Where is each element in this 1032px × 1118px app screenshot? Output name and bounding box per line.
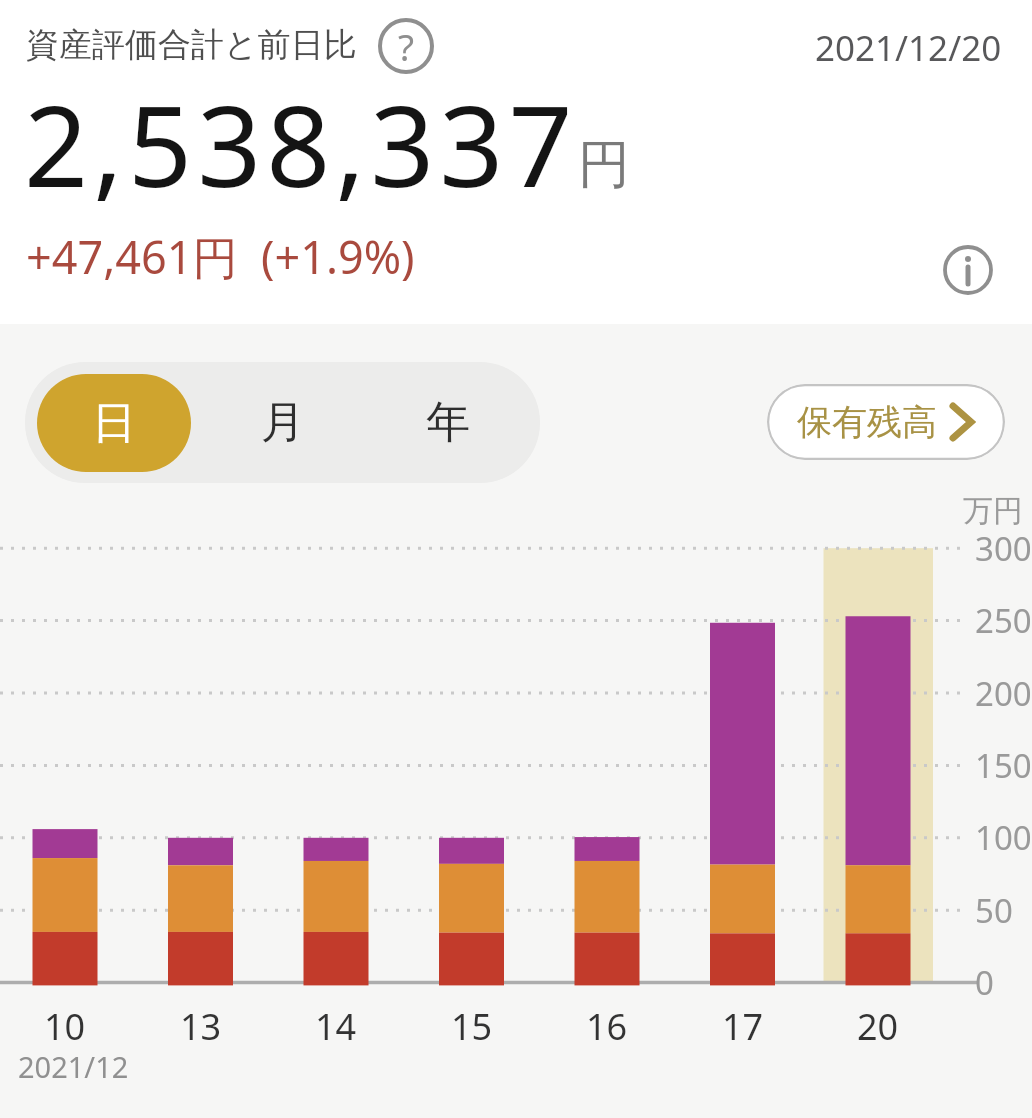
staticText: 10 [44,1002,86,1051]
staticText: 15 [451,1002,493,1051]
staticText: 保有残高 [797,400,937,444]
staticText: 50 [975,888,1013,933]
staticText: 0 [975,960,994,1005]
staticText: 300 [975,526,1032,571]
staticText: 円 [578,132,630,198]
staticText: 13 [180,1002,222,1051]
staticText: 17 [722,1002,764,1051]
button[interactable]: 月 [205,362,360,483]
button[interactable] [944,246,992,294]
button[interactable]: 保有残高 [767,384,1005,460]
staticText: 100 [975,815,1032,860]
staticText: 16 [586,1002,628,1051]
staticText: 年 [426,395,470,450]
staticText: 月 [261,395,305,450]
staticText: 資産評価合計と前日比 [26,24,357,66]
staticText: 150 [975,743,1032,788]
staticText: 日 [92,396,136,451]
staticText: ? [398,21,415,71]
staticText: 2021/12 [18,1047,129,1086]
staticText: +47,461円 (+1.9%) [26,226,415,287]
staticText: 万円 [963,492,1023,530]
staticText: 20 [857,1002,899,1051]
button[interactable]: ? [379,19,433,73]
staticText: 250 [975,598,1032,643]
staticText: 14 [315,1002,357,1051]
staticText: 200 [975,671,1032,716]
button[interactable]: 年 [370,362,525,483]
staticText: 2,538,337 [24,67,578,220]
button[interactable]: 日 [37,374,191,472]
staticText: 2021/12/20 [815,24,1002,72]
